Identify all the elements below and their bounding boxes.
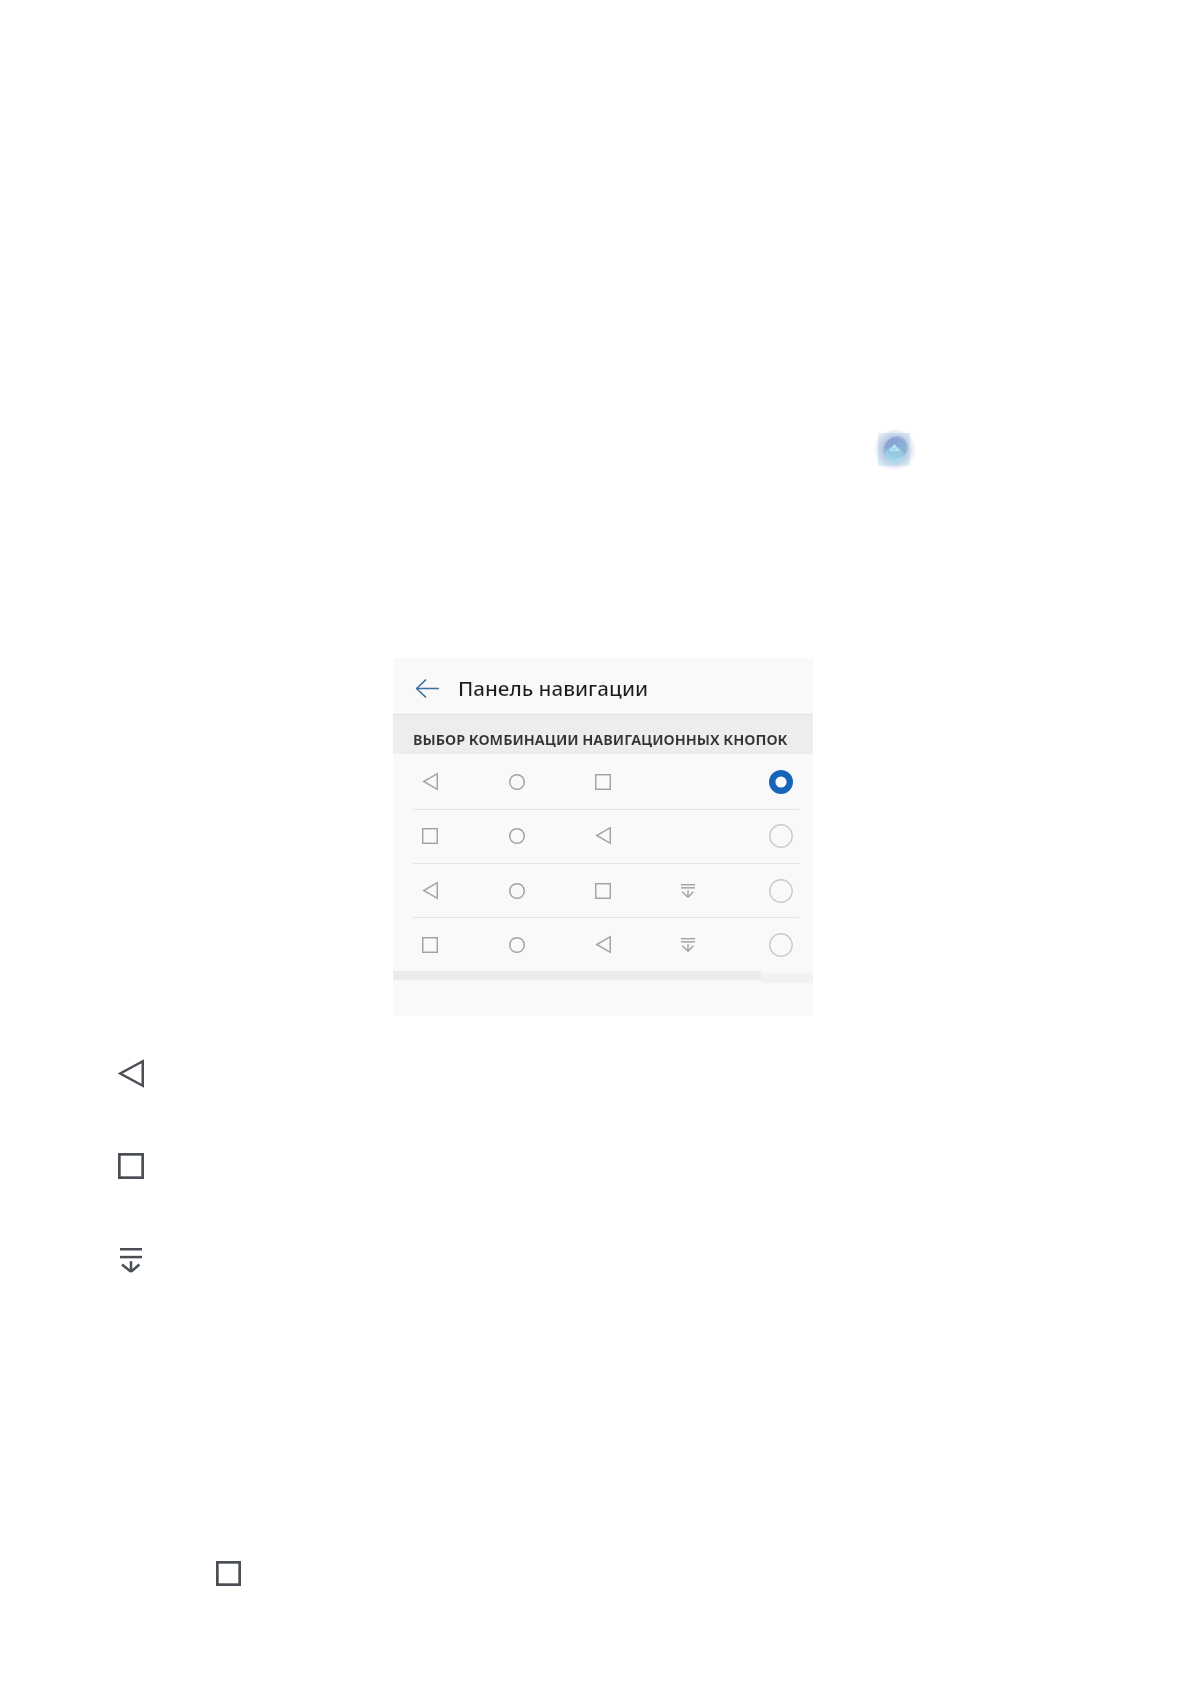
- button[interactable]: Navigation key combination: [393, 917, 813, 971]
- button[interactable]: App icon: [878, 433, 910, 466]
- staticText: Панель навигации: [458, 674, 649, 702]
- button[interactable]: Navigation key combination: [393, 754, 813, 810]
- button[interactable]: Hide navigation bar: [120, 1248, 142, 1273]
- button[interactable]: Navigation key combination: [393, 863, 813, 917]
- button[interactable]: Recent apps: [118, 1153, 144, 1179]
- button[interactable]: Recent apps: [216, 1561, 241, 1586]
- button[interactable]: Navigation key combination: [393, 809, 813, 863]
- button[interactable]: Back: [416, 679, 439, 698]
- button[interactable]: Back: [119, 1060, 144, 1087]
- staticText: ВЫБОР КОМБИНАЦИИ НАВИГАЦИОННЫХ КНОПОК: [413, 730, 788, 750]
